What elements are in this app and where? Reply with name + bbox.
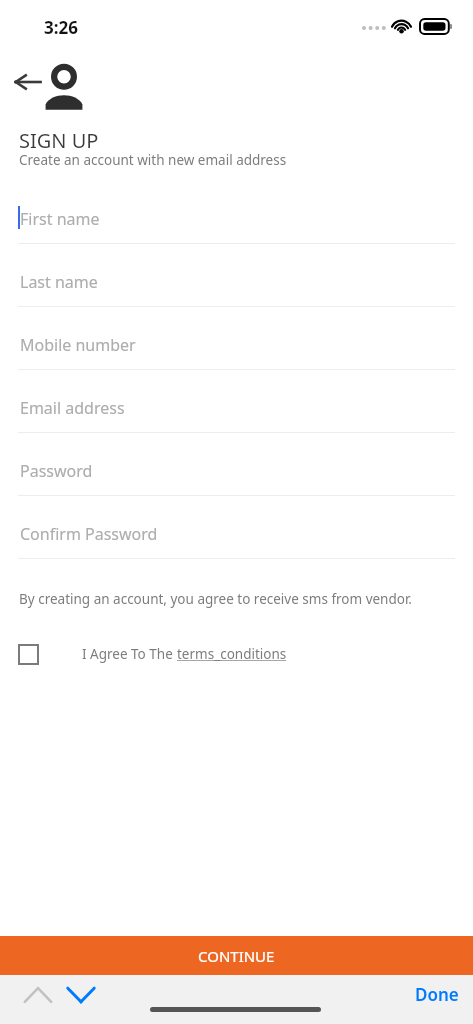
button[interactable]: Confirm Password	[0, 511, 473, 574]
staticText: Confirm Password	[20, 523, 158, 545]
staticText: SIGN UP	[19, 127, 99, 154]
button[interactable]: First name	[0, 196, 473, 259]
staticText: I Agree To The	[82, 645, 177, 663]
button[interactable]: Done	[415, 983, 459, 1006]
staticText: Password	[20, 460, 93, 482]
staticText: Create an account with new email address	[19, 151, 287, 169]
staticText: Last name	[20, 271, 98, 293]
button[interactable]: Previous field	[18, 977, 58, 1017]
button[interactable]: Password	[0, 448, 473, 511]
button[interactable]: Mobile number	[0, 322, 473, 385]
button[interactable]: CONTINUE	[0, 936, 473, 975]
button[interactable]: terms_conditions	[177, 645, 287, 663]
staticText: First name	[20, 208, 100, 230]
button[interactable]: Last name	[0, 259, 473, 322]
button[interactable]: I Agree To The	[10, 634, 287, 674]
staticText: 3:26	[44, 16, 78, 39]
staticText: Done	[415, 983, 459, 1006]
button[interactable]: Next field	[61, 977, 101, 1017]
staticText: Email address	[20, 397, 125, 419]
button[interactable]: Email address	[0, 385, 473, 448]
staticText: By creating an account, you agree to rec…	[19, 590, 412, 608]
staticText: CONTINUE	[198, 946, 275, 966]
staticText: Mobile number	[20, 334, 136, 356]
button[interactable]: Back	[10, 62, 46, 102]
